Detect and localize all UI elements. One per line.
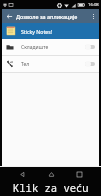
button[interactable]: Sticky Notes! <box>2 23 99 39</box>
staticText: Тел <box>21 61 30 68</box>
staticText: Дозволе за апликације <box>16 13 78 20</box>
staticText: Klik za veću <box>13 181 89 195</box>
button[interactable]: Nazad <box>2 9 16 23</box>
button[interactable]: Складиште <box>2 39 99 55</box>
staticText: 16:08 <box>88 2 99 8</box>
staticText: Складиште <box>21 44 49 51</box>
button[interactable]: Nedavne aplikacije <box>73 168 85 180</box>
button[interactable]: Prekidač <box>85 61 95 67</box>
staticText: Sticky Notes! <box>21 28 53 35</box>
button[interactable]: Početni ekran <box>45 168 57 180</box>
button[interactable]: Nazad <box>16 168 28 180</box>
button[interactable]: Prekidač <box>85 44 95 50</box>
button[interactable]: Тел <box>2 56 99 72</box>
button[interactable]: Još opcija <box>87 10 99 22</box>
